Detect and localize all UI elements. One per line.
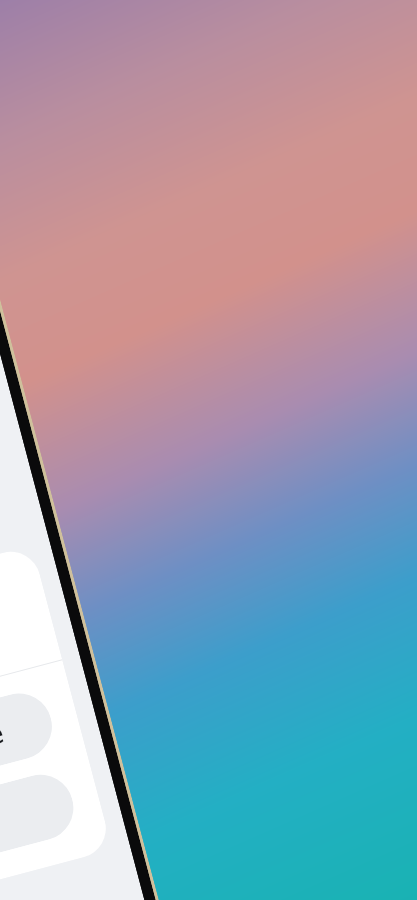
button[interactable]: Mais <box>0 767 81 900</box>
staticText: Criar enquete <box>0 713 8 794</box>
staticText: No que você está pensando? #Hashtag… <box>0 593 23 701</box>
button[interactable]: No que você está pensando? #Hashtag… <box>0 545 62 749</box>
button[interactable]: Criar enquete <box>0 686 59 827</box>
